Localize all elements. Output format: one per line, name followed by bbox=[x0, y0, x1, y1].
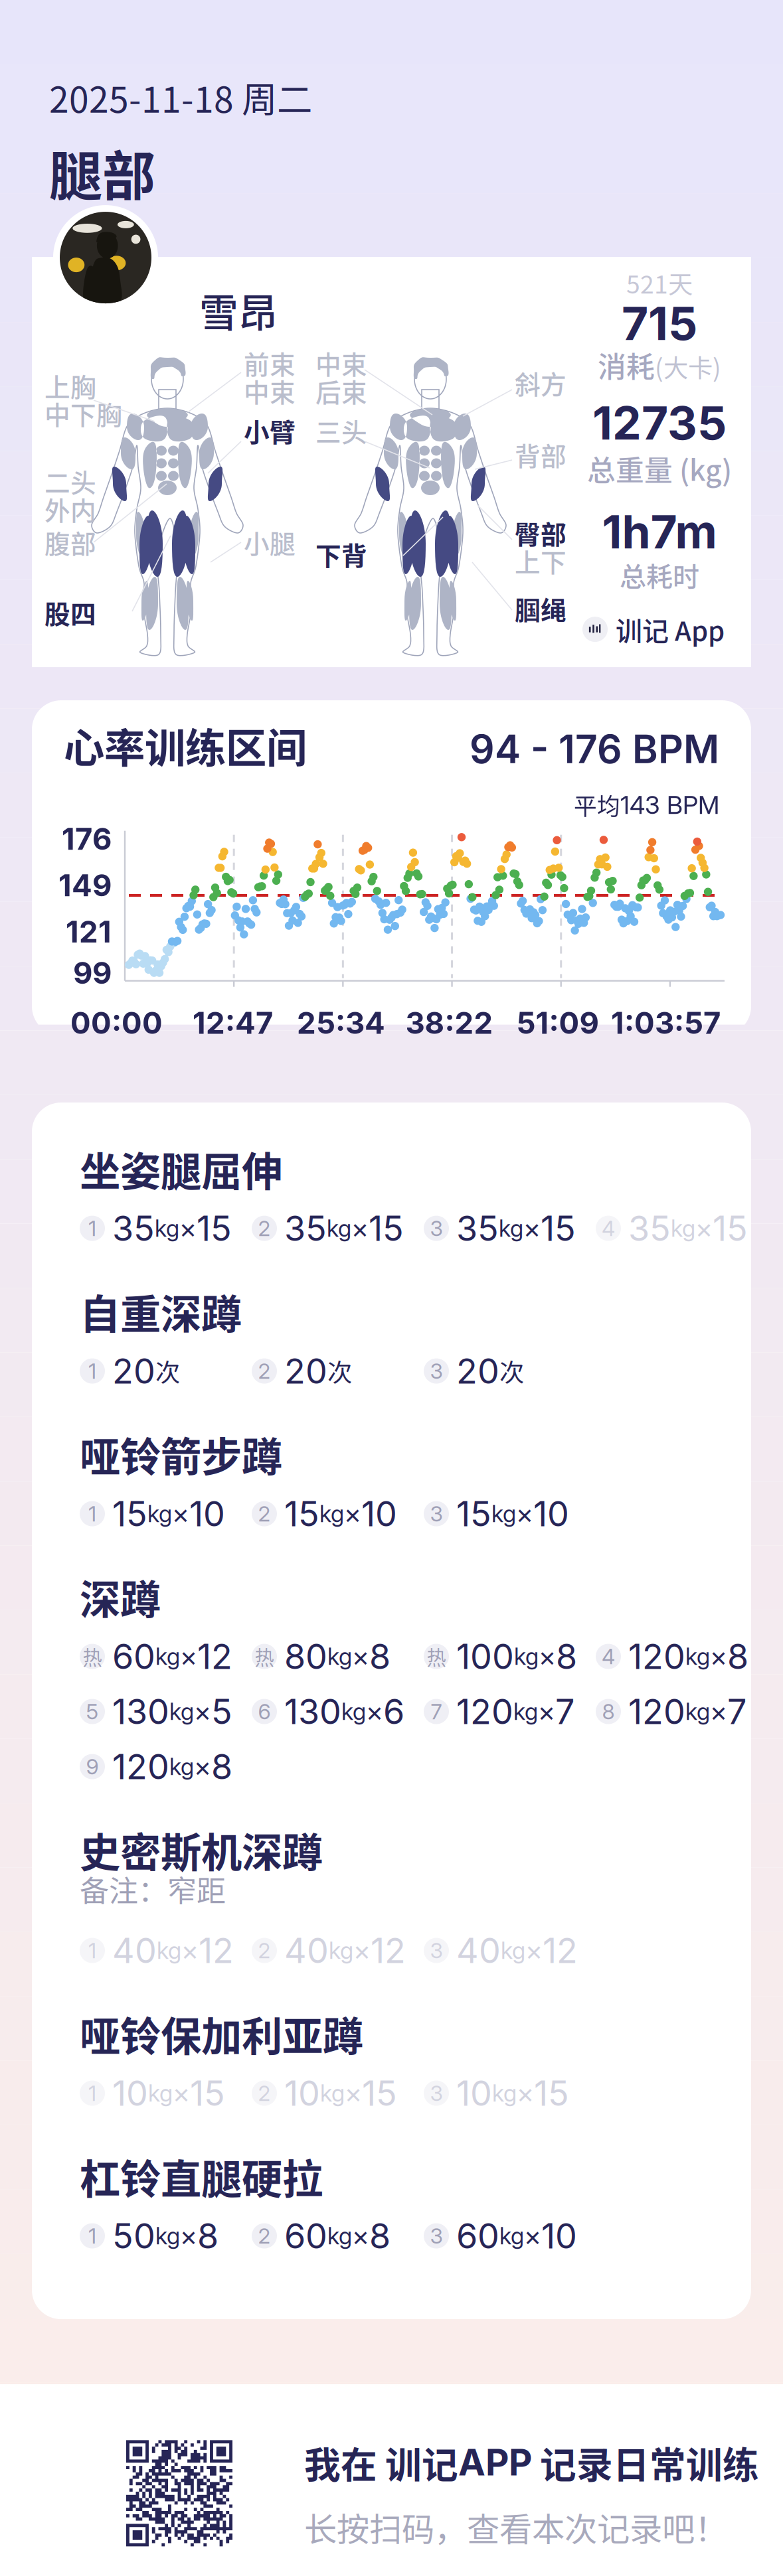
staticText: 热 bbox=[83, 1642, 102, 1671]
staticText: kg bbox=[320, 2079, 345, 2107]
staticText: 二头 bbox=[44, 463, 96, 500]
staticText: 25:34 bbox=[297, 1005, 385, 1041]
staticText: 长按扫码，查看本次记录吧！ bbox=[304, 2503, 727, 2551]
staticText: kg bbox=[491, 1500, 516, 1528]
staticText: 15 bbox=[112, 1493, 147, 1535]
staticText: 训记 bbox=[385, 2436, 458, 2489]
staticText: kg bbox=[319, 1500, 344, 1528]
staticText: 149 bbox=[58, 867, 112, 903]
staticText: × bbox=[194, 1750, 211, 1783]
staticText: kg bbox=[155, 1643, 180, 1670]
staticText: 15 bbox=[190, 2072, 225, 2114]
staticText: 2 bbox=[258, 2223, 271, 2249]
staticText: 120 bbox=[628, 1636, 685, 1677]
staticText: 10 bbox=[112, 2072, 148, 2114]
staticText: 35 bbox=[112, 1207, 155, 1249]
staticText: 次 bbox=[499, 1353, 524, 1389]
staticText: 38:22 bbox=[405, 1005, 493, 1041]
staticText: 2025-11-18 周二 bbox=[49, 72, 312, 123]
staticText: 15 bbox=[713, 1207, 748, 1249]
staticText: 7 bbox=[431, 1699, 442, 1724]
staticText: 热 bbox=[427, 1642, 446, 1671]
staticText: 3 bbox=[430, 2223, 443, 2249]
staticText: 腹部 bbox=[44, 524, 96, 561]
staticText: 121 bbox=[66, 913, 112, 950]
staticText: 143 BPM bbox=[620, 790, 719, 820]
staticText: × bbox=[352, 2219, 369, 2252]
staticText: 训记 App bbox=[616, 610, 725, 648]
staticText: × bbox=[351, 1212, 369, 1245]
staticText: 10 bbox=[541, 2215, 577, 2257]
staticText: 9 bbox=[86, 1754, 99, 1779]
staticText: 35 bbox=[284, 1207, 327, 1249]
staticText: kg bbox=[157, 1937, 181, 1964]
staticText: 3 bbox=[430, 1938, 443, 1963]
staticText: 20 bbox=[284, 1350, 327, 1392]
staticText: 50 bbox=[112, 2215, 155, 2257]
staticText: 前束 bbox=[244, 344, 296, 382]
staticText: 1h7m bbox=[602, 504, 717, 560]
staticText: × bbox=[517, 2077, 534, 2110]
staticText: × bbox=[352, 1640, 369, 1673]
staticText: × bbox=[523, 1212, 541, 1245]
staticText: 10 bbox=[361, 1493, 397, 1535]
staticText: 史密斯机深蹲 bbox=[80, 1820, 323, 1879]
staticText: 35 bbox=[628, 1207, 671, 1249]
staticText: 12 bbox=[199, 1930, 234, 1971]
staticText: × bbox=[180, 2219, 197, 2252]
staticText: kg bbox=[327, 2222, 352, 2250]
staticText: 哑铃箭步蹲 bbox=[80, 1425, 282, 1484]
staticText: 2 bbox=[258, 2080, 271, 2106]
staticText: 8 bbox=[727, 1636, 748, 1677]
staticText: 60 bbox=[112, 1636, 155, 1677]
staticText: 中束 bbox=[315, 344, 367, 382]
staticText: 8 bbox=[369, 2215, 391, 2257]
staticText: 3 bbox=[430, 1215, 443, 1241]
staticText: 消耗 bbox=[598, 345, 655, 386]
staticText: 总重量 (kg) bbox=[587, 448, 732, 489]
staticText: × bbox=[538, 1695, 555, 1728]
staticText: kg bbox=[514, 1643, 539, 1670]
staticText: 热 bbox=[255, 1642, 274, 1671]
staticText: kg bbox=[492, 2079, 517, 2107]
staticText: 10 bbox=[456, 2072, 492, 2114]
staticText: 1 bbox=[88, 2080, 96, 2106]
staticText: 自重深蹲 bbox=[80, 1282, 242, 1341]
staticText: 60 bbox=[284, 2215, 327, 2257]
staticText: 10 bbox=[189, 1493, 225, 1535]
staticText: 心率训练区间 bbox=[64, 716, 307, 775]
staticText: 坐姿腿屈伸 bbox=[80, 1139, 282, 1198]
staticText: kg bbox=[148, 2079, 173, 2107]
staticText: kg bbox=[147, 1500, 172, 1528]
staticText: 12 bbox=[197, 1636, 232, 1677]
staticText: × bbox=[366, 1695, 383, 1728]
staticText: 雪昂 bbox=[199, 282, 278, 339]
staticText: 2 bbox=[258, 1501, 271, 1527]
staticText: 6 bbox=[383, 1691, 404, 1732]
staticText: 7 bbox=[555, 1691, 574, 1732]
staticText: 备注：窄距 bbox=[80, 1868, 226, 1910]
staticText: × bbox=[345, 2077, 362, 2110]
staticText: 130 bbox=[284, 1691, 341, 1732]
staticText: × bbox=[525, 1934, 543, 1967]
staticText: 12 bbox=[371, 1930, 406, 1971]
staticText: APP bbox=[458, 2440, 532, 2484]
staticText: 1 bbox=[88, 1938, 96, 1963]
staticText: kg bbox=[671, 1214, 695, 1242]
staticText: 15 bbox=[369, 1207, 404, 1249]
staticText: × bbox=[710, 1695, 727, 1728]
staticText: 记录日常训练 bbox=[532, 2436, 759, 2489]
staticText: 130 bbox=[112, 1691, 169, 1732]
staticText: 51:09 bbox=[516, 1005, 599, 1041]
staticText: 60 bbox=[456, 2215, 499, 2257]
staticText: × bbox=[695, 1212, 713, 1245]
staticText: kg bbox=[513, 1698, 538, 1725]
staticText: 12:47 bbox=[193, 1005, 273, 1041]
staticText: 3 bbox=[430, 1501, 443, 1527]
staticText: 7 bbox=[727, 1691, 746, 1732]
staticText: × bbox=[172, 1497, 189, 1530]
staticText: 8 bbox=[197, 2215, 218, 2257]
staticText: × bbox=[180, 1640, 197, 1673]
staticText: 哑铃保加利亚蹲 bbox=[80, 2004, 363, 2063]
staticText: × bbox=[539, 1640, 556, 1673]
